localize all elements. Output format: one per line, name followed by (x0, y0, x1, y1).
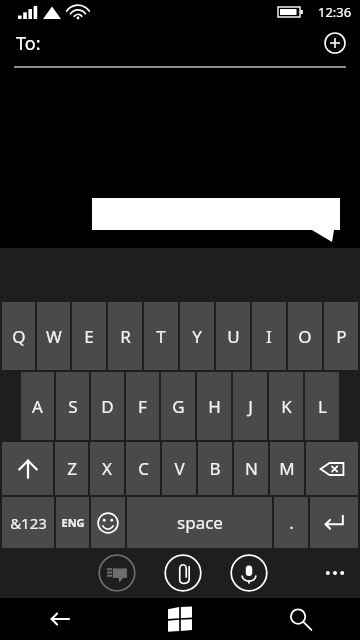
staticText: U (227, 325, 240, 348)
button[interactable]: V (162, 442, 196, 495)
button[interactable]: &123 (2, 497, 54, 548)
button[interactable]: P (324, 302, 358, 370)
staticText: Z (67, 457, 77, 480)
button[interactable]: J (233, 372, 267, 440)
button[interactable]: L (305, 372, 339, 440)
button[interactable]: D (91, 372, 124, 440)
staticText: K (281, 395, 292, 418)
button[interactable]: ENG (56, 497, 89, 548)
staticText: ENG (61, 515, 85, 530)
staticText: B (209, 457, 221, 480)
button[interactable]: B (198, 442, 232, 495)
staticText: S (68, 395, 78, 418)
button[interactable]: S (56, 372, 89, 440)
button[interactable]: Voice message (230, 554, 268, 592)
button[interactable]: Backspace (306, 442, 358, 495)
staticText: 12:36 (318, 3, 352, 21)
button[interactable]: O (288, 302, 322, 370)
staticText: O (298, 325, 312, 348)
button[interactable]: More options (320, 558, 350, 588)
button[interactable]: C (126, 442, 160, 495)
staticText: L (318, 395, 327, 418)
staticText: space (177, 511, 223, 534)
staticText: I (266, 325, 272, 348)
button[interactable]: A (21, 372, 54, 440)
button[interactable]: Home (120, 598, 240, 640)
button[interactable]: Z (55, 442, 88, 495)
button[interactable]: To: (0, 24, 360, 68)
button[interactable]: Messaging (98, 554, 136, 592)
staticText: To: (16, 31, 41, 56)
button[interactable]: Q (2, 302, 35, 370)
button[interactable]: E (72, 302, 106, 370)
button[interactable]: K (269, 372, 303, 440)
staticText: M (279, 457, 295, 480)
staticText: &123 (10, 513, 47, 533)
button[interactable]: Y (180, 302, 214, 370)
button[interactable]: T (144, 302, 178, 370)
button[interactable]: R (108, 302, 142, 370)
staticText: Y (192, 325, 202, 348)
button[interactable]: H (197, 372, 231, 440)
staticText: D (101, 395, 114, 418)
staticText: W (46, 325, 62, 348)
button[interactable]: U (216, 302, 250, 370)
staticText: F (138, 395, 147, 418)
staticText: C (138, 457, 149, 480)
staticText: R (120, 325, 131, 348)
staticText: Q (12, 325, 26, 348)
button[interactable]: W (37, 302, 70, 370)
staticText: V (174, 457, 185, 480)
button[interactable]: Shift (2, 442, 53, 495)
button[interactable]: space (127, 497, 272, 548)
staticText: A (32, 395, 43, 418)
button[interactable]: Back (0, 598, 120, 640)
button[interactable]: Add contact (324, 32, 346, 54)
staticText: H (208, 395, 221, 418)
button[interactable]: Enter (310, 497, 358, 548)
button[interactable]: Search (240, 598, 360, 640)
staticText: . (289, 511, 294, 534)
staticText: T (156, 325, 166, 348)
staticText: P (336, 325, 347, 348)
button[interactable]: G (161, 372, 195, 440)
staticText: G (172, 395, 185, 418)
button[interactable]: M (270, 442, 304, 495)
staticText: N (245, 457, 258, 480)
button[interactable]: I (252, 302, 286, 370)
button[interactable]: F (126, 372, 159, 440)
staticText: J (248, 395, 253, 418)
button[interactable]: Emoji (91, 497, 125, 548)
staticText: X (102, 457, 112, 480)
button[interactable]: X (90, 442, 124, 495)
staticText: E (84, 325, 94, 348)
button[interactable]: . (274, 497, 308, 548)
button[interactable]: Attach (164, 554, 202, 592)
button[interactable]: N (234, 442, 268, 495)
